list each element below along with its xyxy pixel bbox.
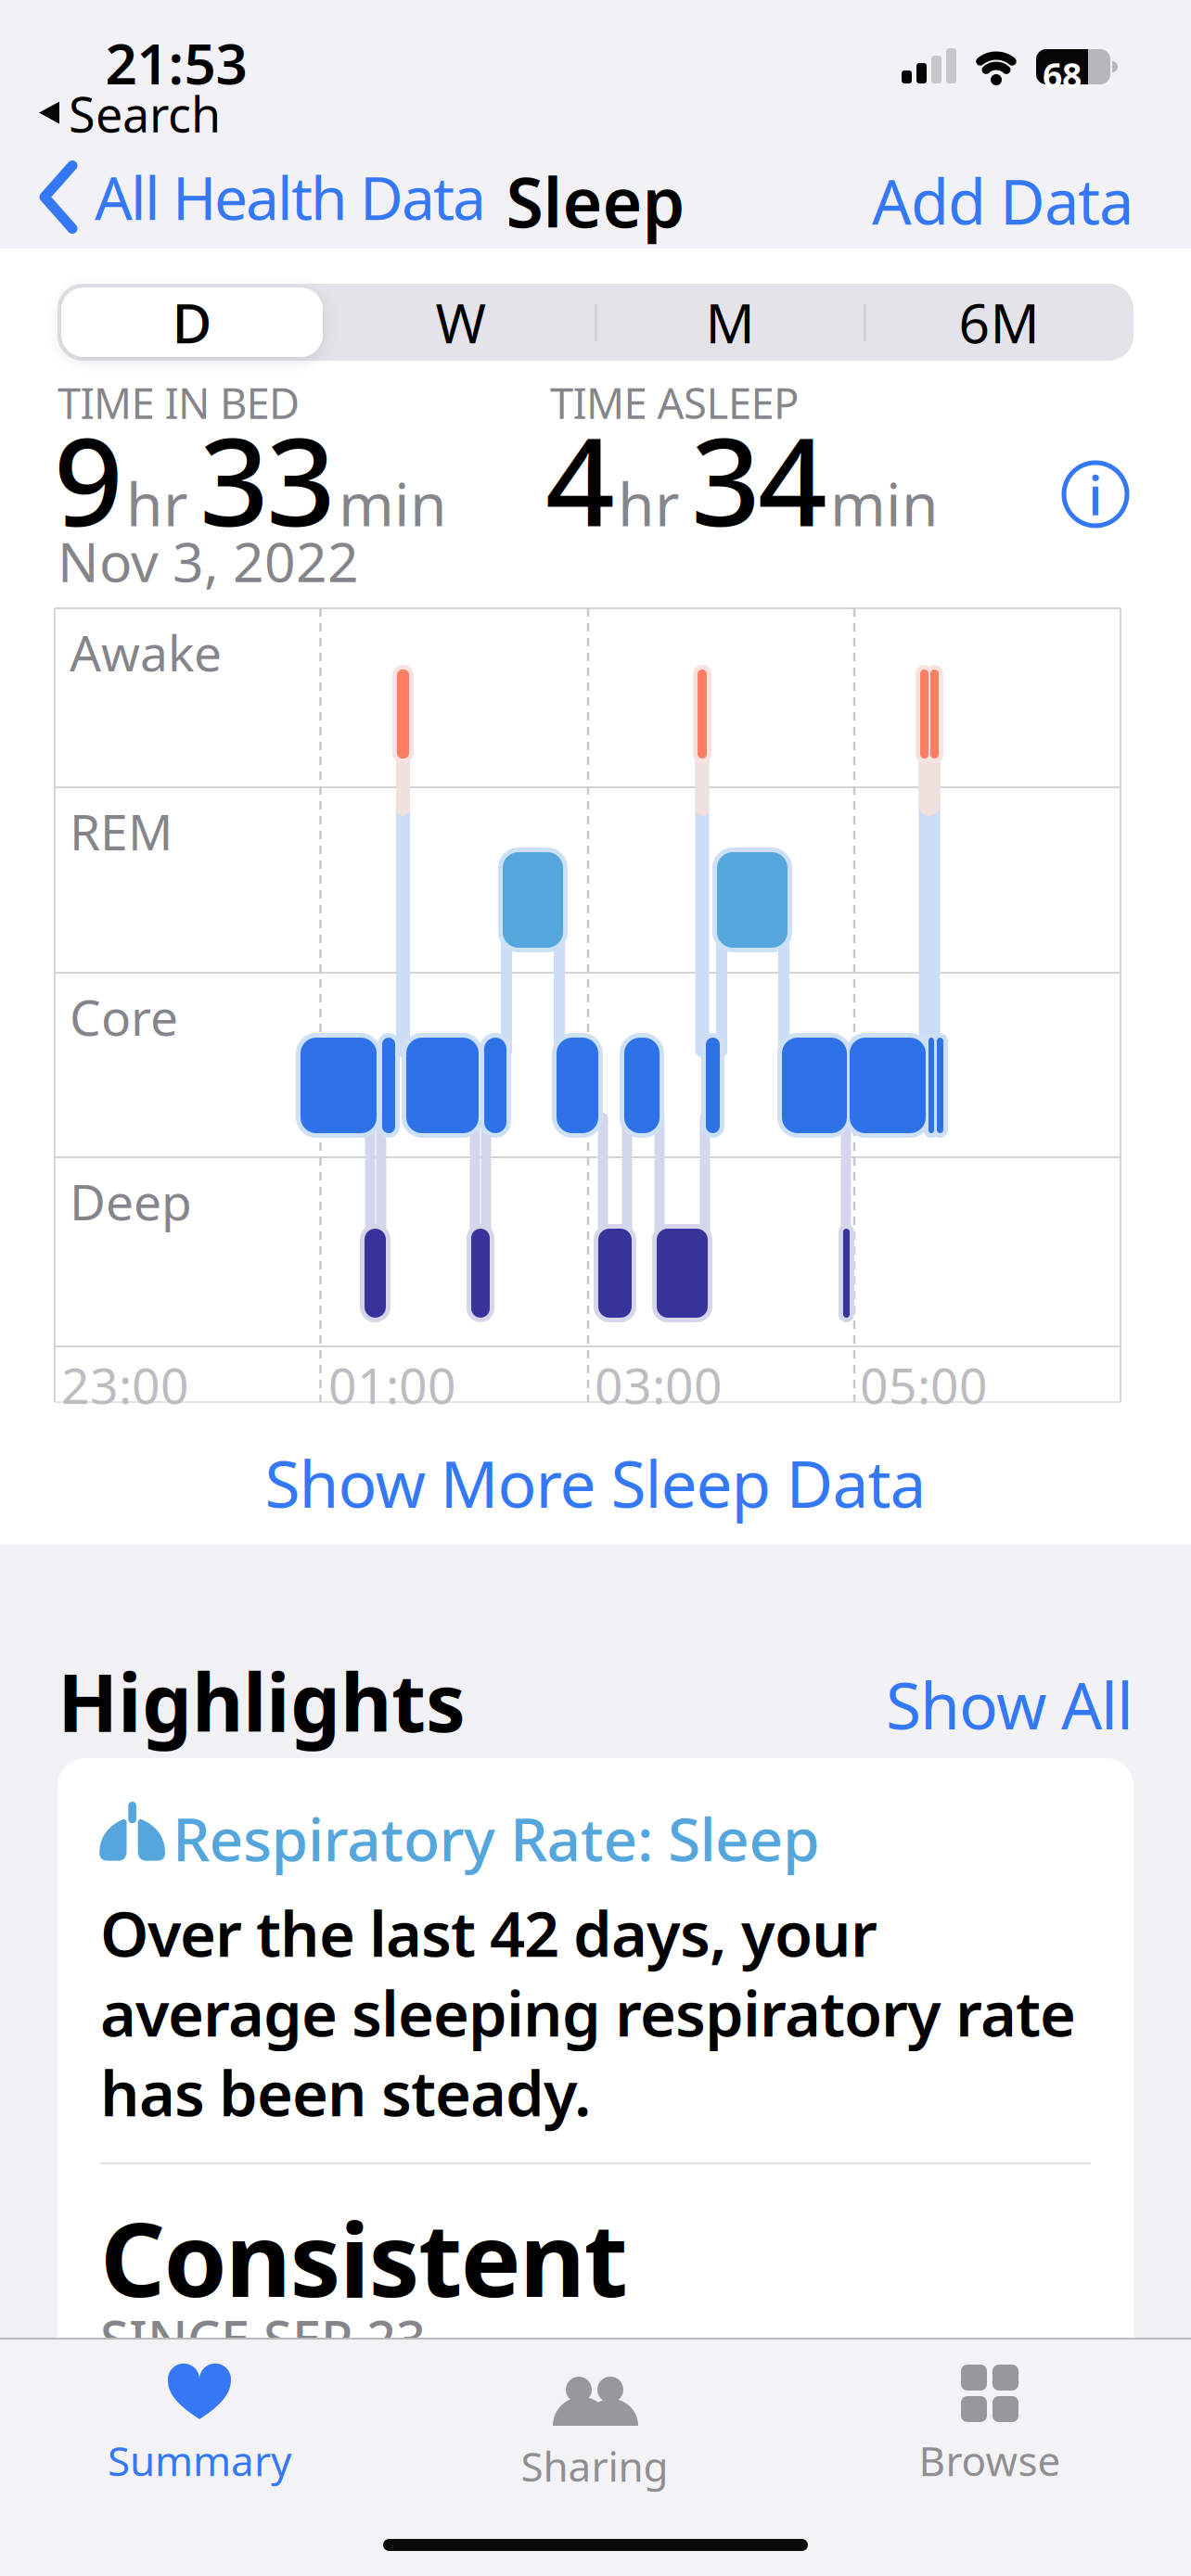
button[interactable]: Add Data — [872, 159, 1133, 242]
staticText: D — [172, 286, 212, 358]
button[interactable]: D — [61, 287, 323, 357]
staticText: Respiratory Rate: Sleep — [173, 1799, 820, 1878]
staticText: M — [705, 286, 755, 358]
staticText: 03:00 — [595, 1352, 723, 1418]
button[interactable]: Browse — [869, 2366, 1110, 2487]
staticText: Summary — [108, 2433, 291, 2487]
staticText: Over the last 42 days, your — [100, 1892, 877, 1974]
staticText: Show All — [886, 1662, 1133, 1747]
staticText: has been steady. — [100, 2051, 591, 2133]
staticText: Deep — [70, 1168, 192, 1234]
staticText: hr — [618, 464, 679, 543]
staticText: REM — [70, 798, 173, 864]
staticText: min — [339, 464, 447, 543]
staticText: average sleeping respiratory rate — [100, 1971, 1076, 2053]
staticText: 21:53 — [105, 26, 247, 100]
staticText: Highlights — [58, 1649, 466, 1754]
staticText: TIME ASLEEP — [550, 375, 799, 430]
staticText: Show More Sleep Data — [265, 1440, 926, 1525]
button[interactable]: Show All — [886, 1662, 1133, 1747]
button[interactable]: 6M — [864, 284, 1133, 361]
button[interactable]: Show More Sleep Data — [0, 1440, 1191, 1525]
staticText: Sleep — [506, 156, 685, 246]
button[interactable]: Search — [39, 82, 221, 146]
staticText: Consistent — [100, 2190, 628, 2325]
staticText: 9 — [54, 399, 123, 560]
staticText: hr — [126, 464, 187, 543]
staticText: 33 — [199, 399, 336, 560]
button[interactable]: Respiratory Rate: Sleep — [58, 1758, 1133, 2407]
staticText: Search — [69, 82, 221, 146]
staticText: SINCE SEP 23 — [100, 2303, 426, 2372]
button[interactable]: About Sleep — [1064, 458, 1127, 530]
staticText: Sharing — [521, 2439, 668, 2493]
staticText: 4 — [545, 399, 615, 560]
staticText: Browse — [919, 2433, 1061, 2487]
staticText: 23:00 — [61, 1352, 189, 1418]
staticText: 01:00 — [328, 1352, 456, 1418]
staticText: 68 — [1043, 52, 1082, 98]
staticText: TIME IN BED — [58, 375, 300, 430]
staticText: i — [1088, 458, 1103, 530]
staticText: 05:00 — [860, 1352, 988, 1418]
staticText: Nov 3, 2022 — [58, 525, 359, 597]
button[interactable]: Summary — [79, 2366, 320, 2487]
staticText: W — [435, 286, 487, 358]
button[interactable]: W — [327, 284, 595, 361]
staticText: Awake — [70, 619, 222, 685]
staticText: 34 — [691, 399, 827, 560]
staticText: All Health Data — [95, 158, 486, 236]
button[interactable]: All Health Data — [41, 158, 486, 236]
button[interactable]: M — [595, 284, 864, 361]
staticText: Core — [70, 984, 178, 1050]
button[interactable]: Sharing — [474, 2366, 715, 2493]
staticText: 6M — [959, 286, 1039, 358]
staticText: min — [830, 464, 939, 543]
staticText: Add Data — [872, 159, 1133, 242]
